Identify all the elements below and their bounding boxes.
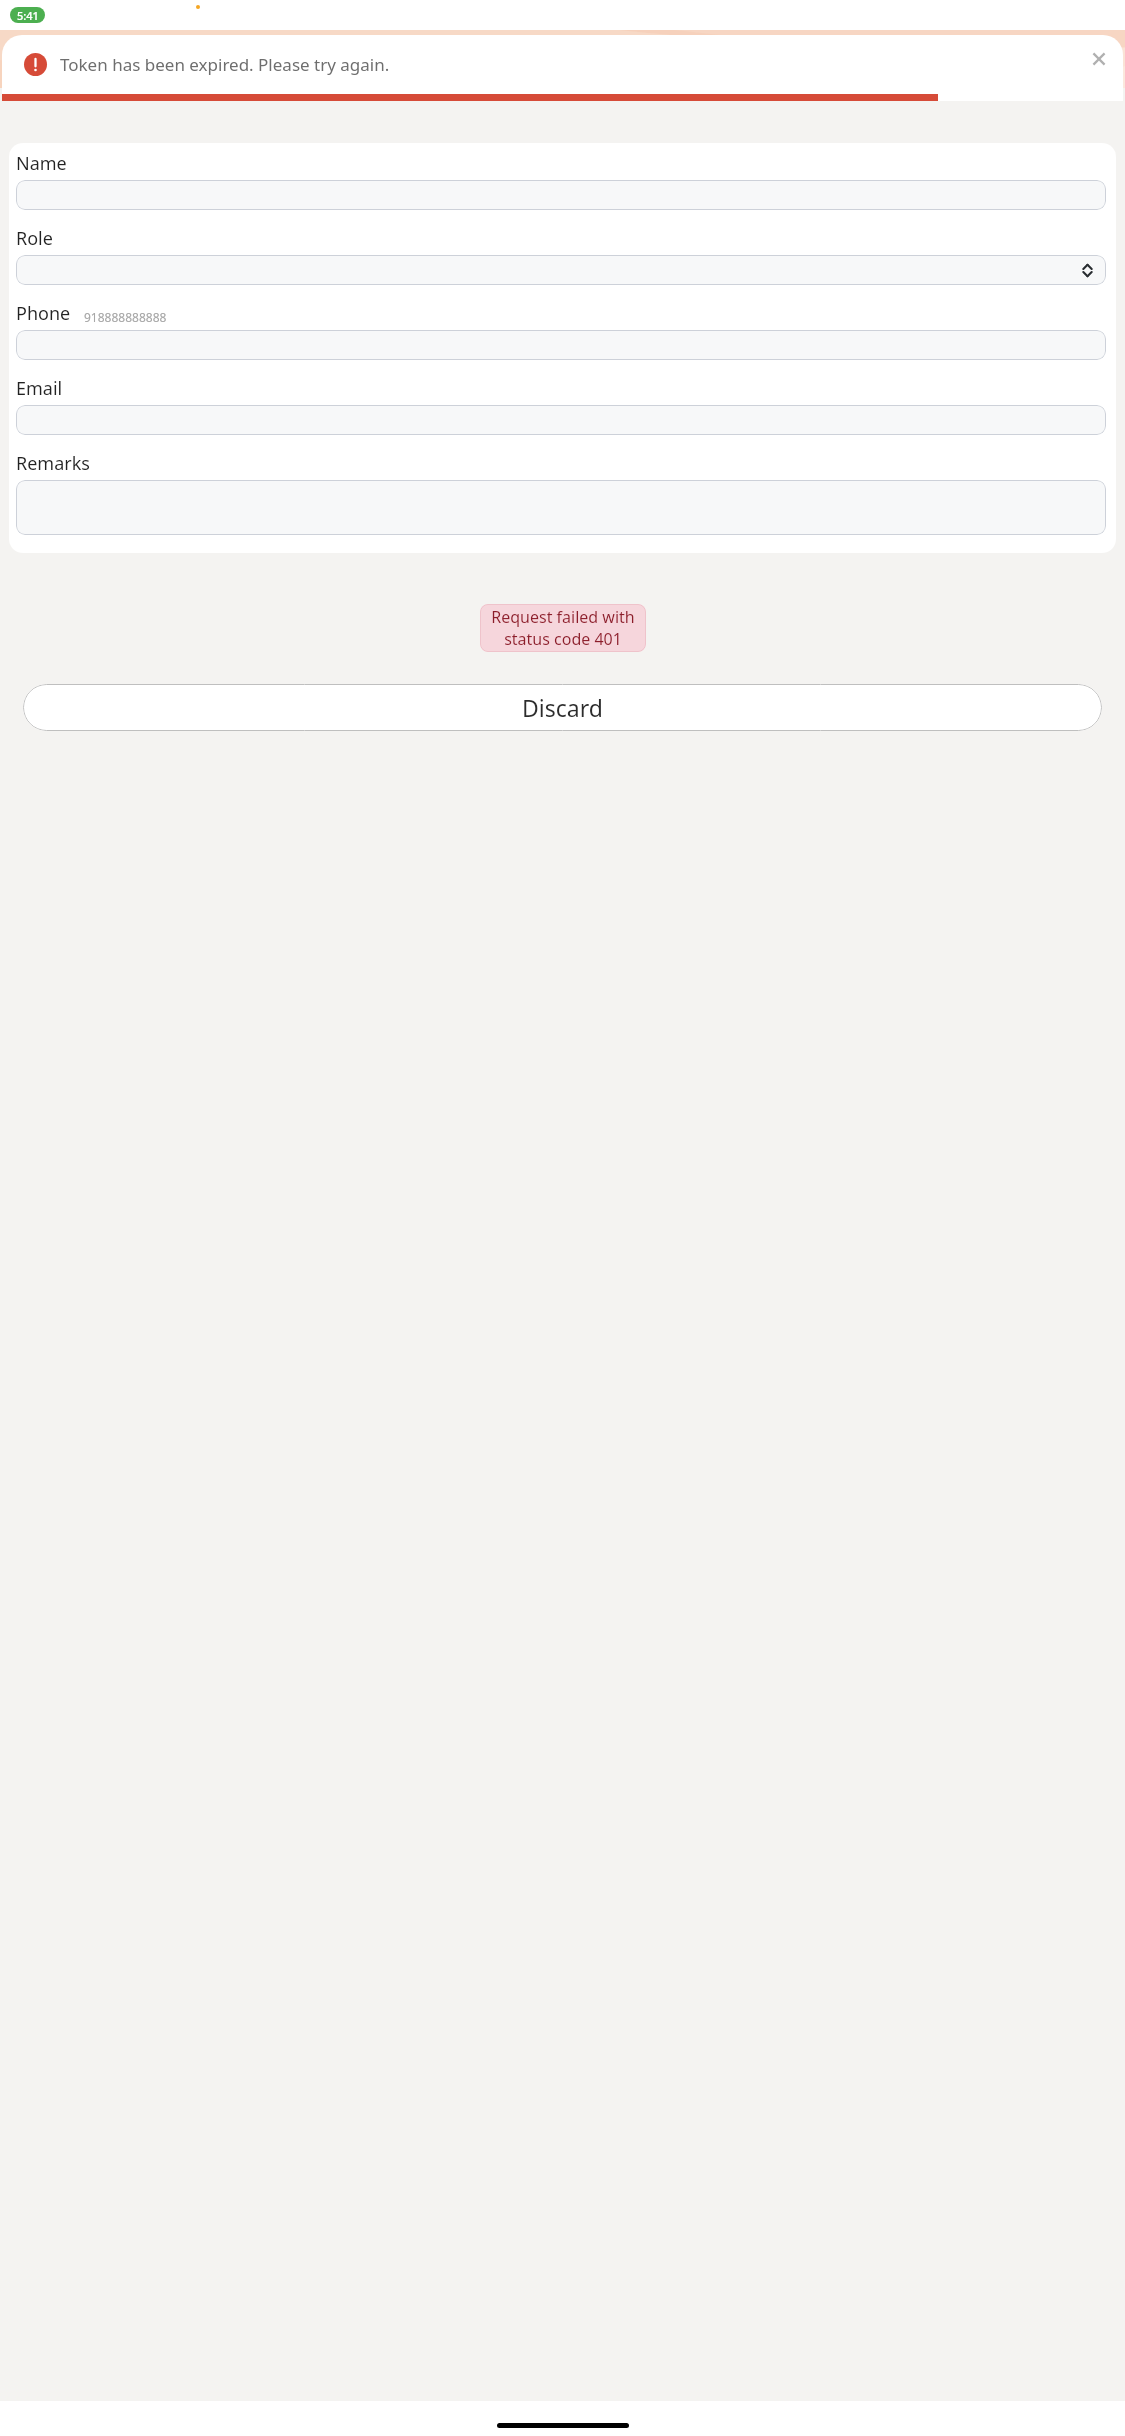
- button[interactable]: [16, 480, 1106, 535]
- staticText: Name: [16, 151, 67, 176]
- staticText: Email: [16, 376, 63, 401]
- button[interactable]: [16, 180, 1106, 210]
- button[interactable]: Discard: [23, 684, 1102, 731]
- staticText: 5:41: [17, 8, 39, 23]
- staticText: Phone: [16, 301, 71, 326]
- button[interactable]: Close: [1082, 42, 1116, 76]
- staticText: Request failed with status code 401: [480, 606, 646, 650]
- button[interactable]: [16, 405, 1106, 435]
- staticText: Discard: [522, 692, 603, 723]
- button[interactable]: [16, 255, 1106, 285]
- button[interactable]: Back: [19, 45, 47, 73]
- staticText: Remarks: [16, 451, 90, 476]
- staticText: Role: [16, 226, 53, 251]
- staticText: Token has been expired. Please try again…: [60, 53, 390, 76]
- staticText: 918888888888: [84, 309, 167, 325]
- button[interactable]: [16, 330, 1106, 360]
